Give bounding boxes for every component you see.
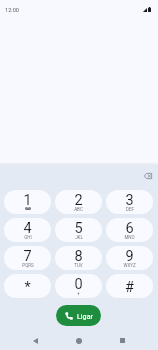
staticText: 0	[74, 276, 83, 293]
staticText: TUV	[74, 263, 83, 268]
button[interactable]: 4	[4, 218, 51, 242]
staticText: DEF	[126, 207, 134, 212]
staticText: 8	[74, 248, 83, 265]
button[interactable]: 1	[4, 190, 51, 214]
staticText: 9	[125, 248, 134, 265]
staticText: 5	[74, 220, 83, 237]
button[interactable]: 0	[55, 274, 102, 298]
button[interactable]: 7	[4, 246, 51, 270]
staticText: 4	[23, 220, 32, 237]
button[interactable]: *	[4, 274, 51, 298]
button[interactable]: 9	[106, 246, 153, 270]
staticText: MNO	[124, 235, 135, 240]
staticText: 3	[125, 192, 134, 209]
staticText: Ligar	[77, 312, 93, 320]
staticText: 6	[125, 220, 134, 237]
staticText: JKL	[75, 235, 83, 240]
button[interactable]: Ligar	[56, 305, 101, 326]
staticText: WXYZ	[123, 263, 136, 268]
button[interactable]: 2	[55, 190, 102, 214]
staticText: 1	[23, 192, 32, 209]
staticText: *	[24, 279, 31, 296]
button[interactable]: Backspace	[140, 168, 156, 184]
button[interactable]: Recent apps	[112, 331, 132, 350]
staticText: ABC	[74, 207, 83, 212]
button[interactable]: #	[106, 274, 153, 298]
staticText: 2	[74, 192, 83, 209]
staticText: 12:00	[5, 7, 19, 14]
staticText: +	[77, 291, 80, 296]
button[interactable]: 8	[55, 246, 102, 270]
button[interactable]: 5	[55, 218, 102, 242]
button[interactable]: Back	[25, 331, 45, 350]
staticText: #	[125, 279, 134, 296]
button[interactable]: 6	[106, 218, 153, 242]
button[interactable]: Home	[69, 331, 89, 350]
staticText: PQRS	[22, 263, 34, 268]
staticText: GHI	[24, 235, 32, 240]
button[interactable]: 3	[106, 190, 153, 214]
staticText: 7	[23, 248, 32, 265]
